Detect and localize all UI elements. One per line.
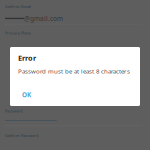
- button[interactable]: OK: [18, 88, 35, 101]
- staticText: Confirm Email: [5, 4, 31, 9]
- staticText: @gmail.com: [24, 14, 63, 23]
- staticText: Password: [5, 108, 22, 113]
- staticText: Confirm Password: [5, 133, 38, 138]
- staticText: ••••••••••••••••••••••••••: [5, 117, 57, 123]
- staticText: OK: [22, 90, 31, 99]
- staticText: Error: [18, 53, 36, 63]
- staticText: Primary Phone: [5, 30, 31, 35]
- staticText: Password must be at least 8 characters: [18, 67, 130, 75]
